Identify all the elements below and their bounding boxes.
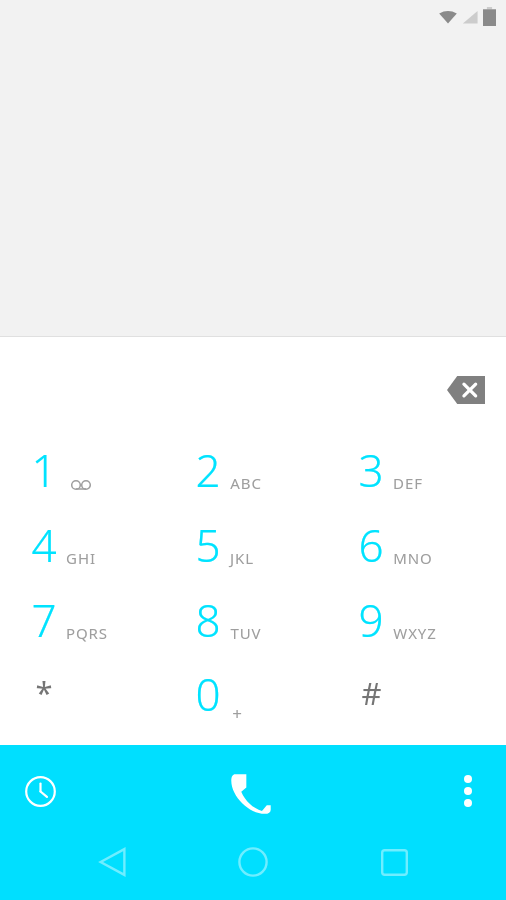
button[interactable]: More options [440, 760, 496, 822]
staticText: 1 [31, 440, 57, 500]
staticText: 6 [358, 515, 384, 575]
staticText: 2 [195, 440, 221, 500]
button[interactable]: Recent apps [366, 840, 422, 884]
button[interactable]: Home [225, 840, 281, 884]
button[interactable]: Call [213, 752, 293, 832]
button[interactable]: 7 [18, 583, 182, 657]
staticText: JKL [230, 548, 254, 568]
button[interactable]: 5 [182, 508, 346, 582]
button[interactable]: Backspace [438, 366, 494, 414]
button[interactable]: Call history [10, 760, 70, 822]
staticText: 4 [31, 515, 57, 575]
staticText: 3 [358, 440, 384, 500]
staticText: MNO [393, 548, 433, 568]
staticText: TUV [230, 623, 262, 643]
staticText: PQRS [66, 623, 108, 643]
staticText: ABC [230, 473, 262, 493]
staticText: * [35, 671, 53, 713]
staticText: + [232, 702, 242, 725]
button[interactable]: 8 [182, 583, 346, 657]
staticText: 9 [358, 590, 384, 650]
button[interactable]: 9 [345, 583, 506, 657]
button[interactable]: 3 [345, 433, 506, 507]
staticText: 8 [195, 590, 221, 650]
staticText: 5 [195, 515, 221, 575]
staticText: # [361, 672, 382, 714]
staticText: GHI [66, 548, 96, 568]
staticText: DEF [393, 473, 423, 493]
staticText: 7 [31, 590, 57, 650]
button[interactable]: 2 [182, 433, 346, 507]
staticText: 0 [195, 664, 221, 724]
button[interactable]: Back [84, 840, 140, 884]
button[interactable]: 6 [345, 508, 506, 582]
button[interactable]: 1 [18, 433, 182, 507]
button[interactable]: 4 [18, 508, 182, 582]
button[interactable]: 0 [182, 657, 346, 731]
button[interactable]: Pound [345, 656, 506, 730]
staticText: WXYZ [393, 623, 437, 643]
button[interactable]: Star [18, 655, 182, 729]
